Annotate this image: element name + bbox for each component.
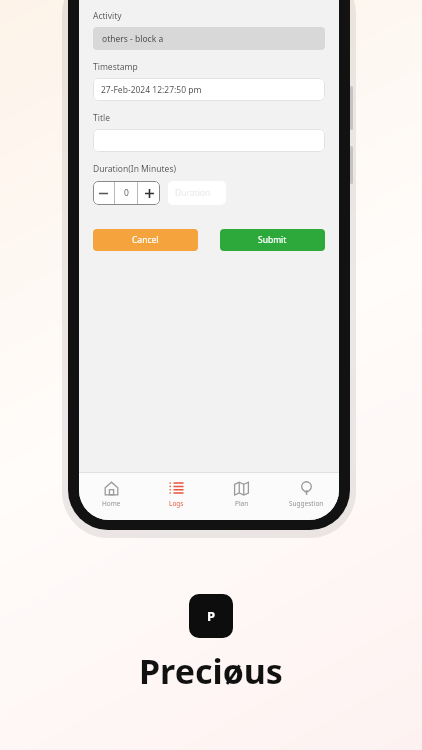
staticText: 27-Feb-2024 12:27:50 pm bbox=[101, 84, 202, 96]
button[interactable] bbox=[93, 129, 325, 152]
button[interactable]: Cancel bbox=[93, 229, 198, 251]
button[interactable]: Submit bbox=[220, 229, 325, 251]
button[interactable]: Suggestion bbox=[274, 473, 339, 520]
button[interactable]: Duration bbox=[168, 181, 226, 205]
staticText: Timestamp bbox=[93, 61, 138, 73]
staticText: Submit bbox=[258, 234, 287, 246]
button[interactable]: Home bbox=[79, 473, 144, 520]
staticText: Preciøus bbox=[139, 648, 283, 694]
staticText: Cancel bbox=[132, 234, 159, 246]
staticText: 0 bbox=[124, 187, 129, 199]
staticText: Duration bbox=[175, 187, 211, 199]
staticText: P bbox=[207, 607, 216, 625]
staticText: Title bbox=[93, 112, 110, 124]
staticText: Activity bbox=[93, 10, 122, 22]
staticText: others - block a bbox=[102, 33, 164, 45]
button[interactable]: Increase duration bbox=[138, 181, 160, 205]
staticText: Logs bbox=[169, 499, 184, 508]
staticText: Plan bbox=[235, 499, 249, 508]
button[interactable]: Decrease duration bbox=[93, 181, 114, 205]
staticText: Suggestion bbox=[289, 499, 324, 508]
button[interactable]: others - block a bbox=[93, 27, 325, 50]
button[interactable]: 27-Feb-2024 12:27:50 pm bbox=[93, 78, 325, 101]
button[interactable]: Logs bbox=[144, 473, 209, 520]
staticText: Home bbox=[102, 499, 121, 508]
button[interactable]: Plan bbox=[209, 473, 274, 520]
staticText: Duration(In Minutes) bbox=[93, 163, 177, 175]
